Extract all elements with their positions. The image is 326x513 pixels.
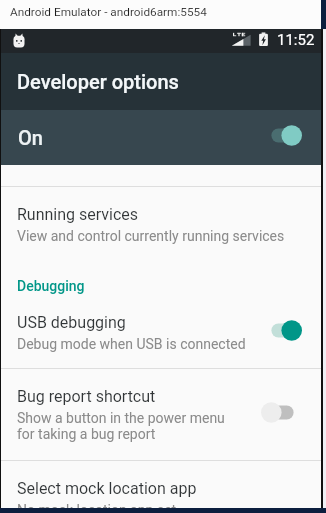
staticText: Show a button in the power menu for taki… [17,410,225,442]
staticText: View and control currently running servi… [17,228,285,244]
staticText: On [18,126,43,149]
staticText: Running services [17,205,139,224]
staticText: Bug report shortcut [17,387,156,406]
button[interactable]: USB debugging toggle [261,320,302,341]
button[interactable]: Developer options master switch [261,125,302,146]
staticText: USB debugging [17,313,126,332]
button[interactable]: Bug report shortcut toggle [261,402,302,423]
staticText: 11:52 [277,31,315,49]
button[interactable]: Select mock location app [0,479,321,508]
staticText: Select mock location app [17,479,197,498]
staticText: Developer options [17,70,179,93]
button[interactable]: On [0,110,321,165]
button[interactable]: USB debugging [0,313,321,352]
button[interactable]: Bug report shortcut [0,387,321,442]
staticText: Android Emulator - android6arm:5554 [10,5,207,19]
staticText: No mock location app set [17,502,177,508]
staticText: Debugging [17,278,85,294]
button[interactable]: Running services [0,205,321,244]
staticText: Debug mode when USB is connected [17,336,246,352]
